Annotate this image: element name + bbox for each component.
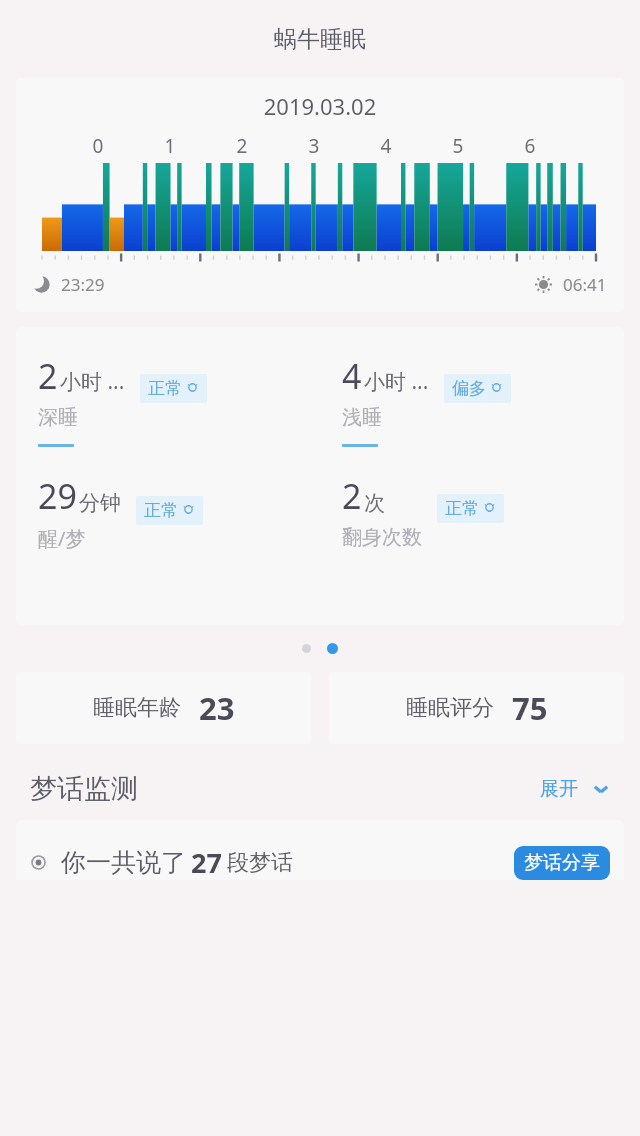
staticText: 浅睡	[342, 405, 382, 430]
staticText: 梦话监测	[30, 772, 138, 806]
staticText: 6	[521, 133, 539, 155]
button[interactable]: 你一共说了	[16, 820, 624, 880]
staticText: 小时 ...	[364, 367, 429, 396]
staticText: 偏多	[452, 378, 486, 399]
staticText: 23	[199, 687, 235, 729]
staticText: 梦话分享	[524, 851, 600, 875]
staticText: 正常	[144, 500, 178, 521]
staticText: 2	[38, 353, 58, 399]
staticText: 23:29	[61, 273, 105, 296]
staticText: 2	[342, 473, 362, 519]
staticText: 3	[305, 133, 323, 155]
button[interactable]: 睡眠年龄	[16, 672, 311, 744]
button[interactable]: 梦话分享	[514, 846, 610, 880]
button[interactable]: 29	[38, 473, 320, 552]
staticText: 正常	[445, 498, 479, 519]
staticText: 2	[233, 133, 251, 155]
button[interactable]: 偏多	[443, 373, 512, 404]
staticText: 深睡	[38, 405, 78, 430]
staticText: 蜗牛睡眠	[274, 25, 366, 54]
staticText: 06:41	[563, 273, 607, 296]
staticText: 展开	[540, 777, 578, 801]
other: Wake time	[535, 276, 552, 293]
staticText: 睡眠评分	[406, 694, 494, 722]
staticText: 小时 ...	[60, 367, 125, 396]
staticText: 正常	[148, 378, 182, 399]
button[interactable]: 4	[342, 353, 624, 447]
button[interactable]: 展开	[534, 771, 618, 807]
staticText: 睡眠年龄	[93, 694, 181, 722]
button[interactable]: 正常	[135, 495, 204, 526]
staticText: 27	[191, 844, 222, 880]
staticText: 翻身次数	[342, 525, 422, 550]
button[interactable]: 正常	[139, 373, 208, 404]
staticText: 75	[512, 687, 548, 729]
staticText: 2019.03.02	[16, 91, 624, 121]
other: Sleep start	[33, 276, 50, 293]
staticText: 段梦话	[227, 849, 293, 877]
staticText: 分钟	[79, 490, 121, 516]
staticText: 4	[377, 133, 395, 155]
staticText: 29	[38, 473, 77, 519]
button[interactable]: 正常	[436, 493, 505, 524]
staticText: 醒/梦	[38, 525, 86, 552]
button[interactable]: 2	[38, 353, 320, 447]
staticText: 4	[342, 353, 362, 399]
staticText: 5	[449, 133, 467, 155]
button[interactable]: 睡眠评分	[329, 672, 624, 744]
staticText: 次	[364, 490, 385, 516]
staticText: 你一共说了	[61, 847, 186, 878]
other: Expand	[590, 778, 612, 800]
staticText: 0	[89, 133, 107, 155]
button[interactable]: 2	[342, 473, 624, 550]
staticText: 1	[161, 133, 179, 155]
button[interactable]: 2019.03.02	[16, 78, 624, 312]
